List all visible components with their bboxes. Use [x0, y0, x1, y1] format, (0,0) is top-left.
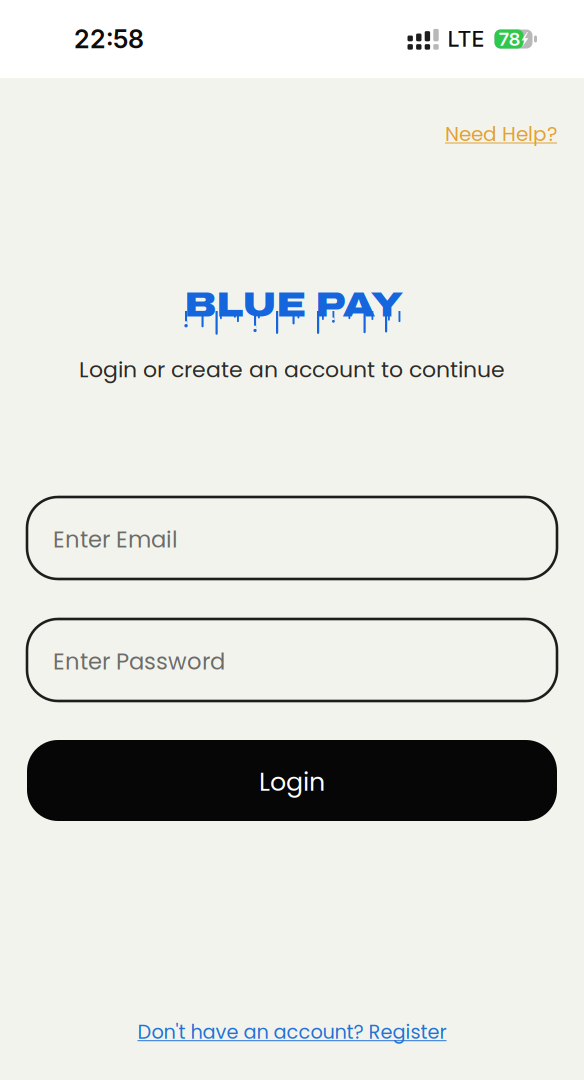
staticText: Login or create an account to continue [79, 354, 505, 385]
button[interactable]: Don't have an account? Register [0, 1015, 584, 1049]
staticText: Need Help? [445, 120, 557, 148]
staticText: Don't have an account? Register [137, 1018, 446, 1046]
staticText: Enter Password [53, 646, 225, 677]
staticText: 78 [498, 28, 520, 50]
staticText: Login [259, 764, 325, 800]
button[interactable]: Enter Password [27, 619, 557, 701]
button[interactable]: Need Help? [427, 117, 557, 151]
button[interactable]: Login [27, 740, 557, 821]
staticText: Enter Email [53, 524, 178, 555]
staticText: BLUE PAY [184, 286, 403, 324]
staticText: LTE [447, 26, 484, 52]
button[interactable]: Enter Email [27, 497, 557, 579]
staticText: 22:58 [74, 24, 144, 54]
